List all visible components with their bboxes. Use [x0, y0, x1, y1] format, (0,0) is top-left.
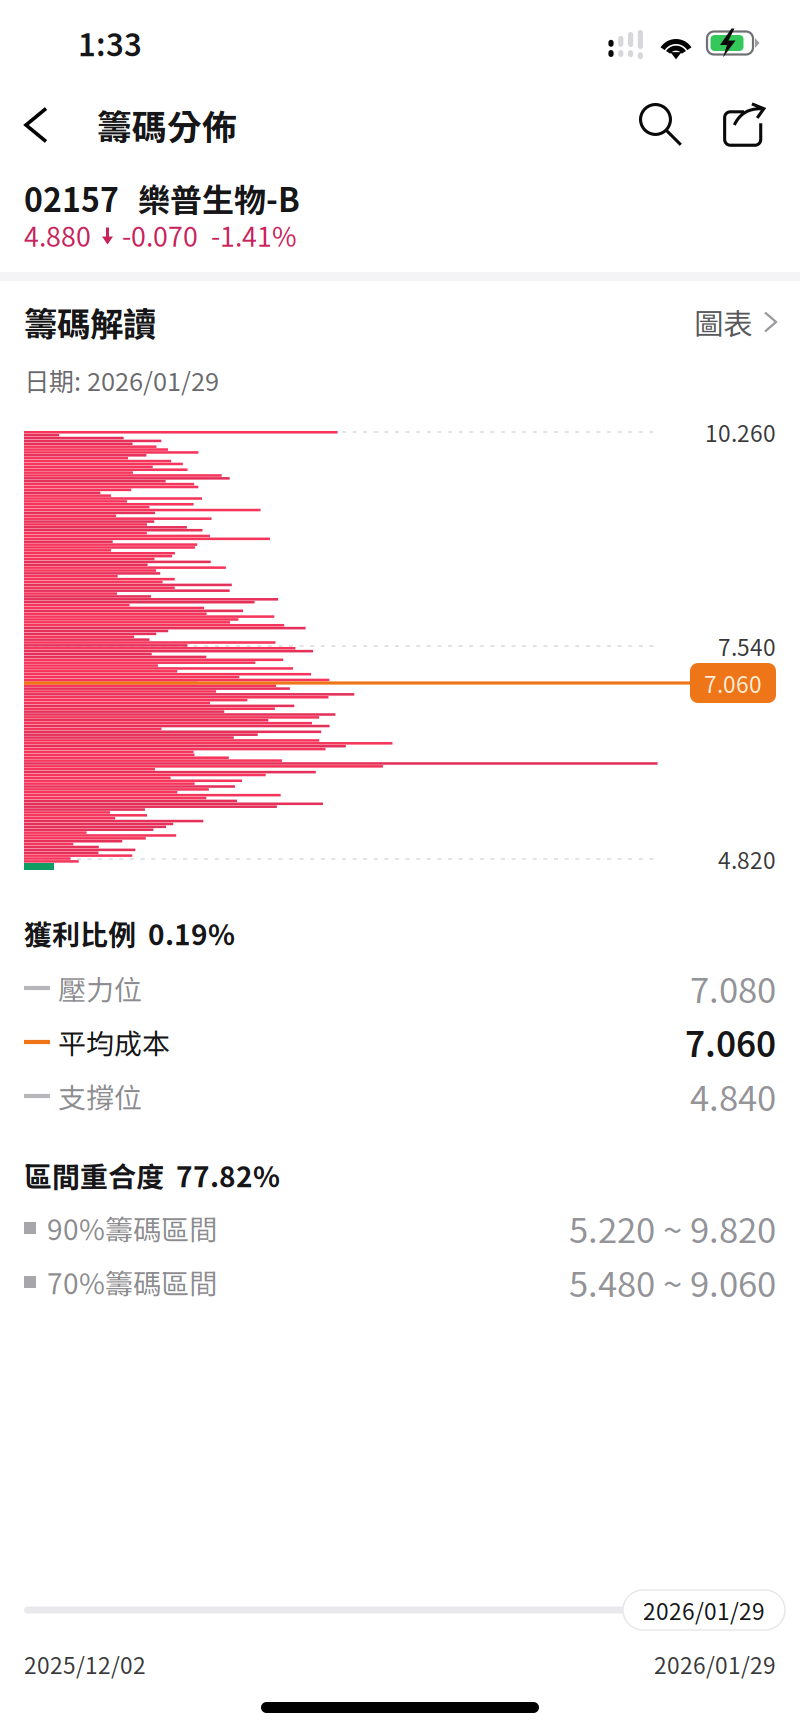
- staticText: 日期: 2026/01/29: [24, 362, 219, 398]
- staticText: 70%籌碼區間: [47, 1262, 217, 1302]
- staticText: 5.220 ~ 9.820: [569, 1203, 776, 1252]
- button[interactable]: Share: [714, 93, 774, 157]
- staticText: 圖表: [694, 301, 752, 343]
- button[interactable]: Search: [630, 92, 692, 158]
- staticText: 籌碼解讀: [24, 298, 156, 346]
- staticText: 獲利比例 0.19%: [24, 913, 235, 953]
- staticText: 2026/01/29: [643, 1594, 765, 1626]
- staticText: 支撐位: [58, 1076, 142, 1116]
- staticText: 4.820: [718, 843, 776, 875]
- staticText: 10.260: [705, 416, 776, 448]
- staticText: 平均成本: [58, 1022, 170, 1062]
- staticText: 4.880: [24, 216, 91, 254]
- staticText: 7.060: [704, 667, 762, 699]
- staticText: 4.840: [690, 1071, 776, 1120]
- staticText: 2026/01/29: [654, 1648, 776, 1680]
- staticText: 2025/12/02: [24, 1648, 146, 1680]
- staticText: 90%籌碼區間: [47, 1208, 217, 1248]
- staticText: 7.060: [685, 1017, 776, 1066]
- staticText: 樂普生物-B: [138, 175, 300, 221]
- button[interactable]: 2026/01/29: [623, 1590, 785, 1630]
- staticText: 籌碼分佈: [97, 100, 237, 149]
- staticText: 5.480 ~ 9.060: [569, 1257, 776, 1306]
- staticText: 7.540: [718, 630, 776, 662]
- staticText: 7.080: [690, 963, 776, 1012]
- staticText: -0.070: [122, 216, 198, 254]
- button[interactable]: Back: [0, 96, 78, 153]
- button[interactable]: 圖表: [694, 293, 776, 351]
- staticText: 壓力位: [58, 968, 142, 1008]
- staticText: -1.41%: [211, 216, 297, 254]
- staticText: 02157: [24, 175, 119, 221]
- staticText: 1:33: [78, 21, 142, 65]
- staticText: 區間重合度 77.82%: [24, 1155, 280, 1195]
